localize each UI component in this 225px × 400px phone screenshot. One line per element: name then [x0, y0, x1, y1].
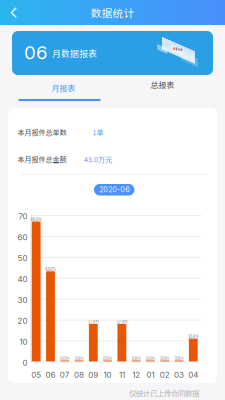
staticText: 10 — [104, 370, 112, 380]
staticText: 09 — [88, 370, 98, 380]
staticText: 20 — [17, 316, 27, 326]
staticText: 05 — [31, 370, 41, 380]
staticText: 17.9万 — [116, 318, 127, 325]
staticText: 10.8万 — [188, 333, 199, 340]
staticText: 40 — [17, 274, 27, 284]
staticText: 本月报件总金额 — [17, 154, 66, 164]
staticText: 本月报件总单数 — [17, 127, 66, 137]
staticText: 60 — [17, 232, 27, 242]
staticText: 06 — [24, 41, 48, 64]
staticText: 43.0万元 — [84, 154, 112, 164]
staticText: 06 — [45, 370, 55, 380]
staticText: 66.8万 — [31, 216, 42, 222]
staticText: 01 — [146, 370, 154, 380]
staticText: 总报表 — [150, 79, 174, 90]
staticText: 50 — [17, 253, 27, 263]
button[interactable]: 月报表 — [11, 75, 116, 101]
staticText: 30 — [17, 295, 27, 305]
staticText: 月数据报表 — [48, 46, 97, 59]
staticText: 0.0万 — [132, 355, 141, 361]
staticText: 10 — [19, 337, 27, 347]
staticText: 2020-06 — [99, 185, 129, 194]
staticText: 仅统计已上传合同数据 — [129, 388, 199, 398]
staticText: 07 — [60, 370, 70, 380]
staticText: 08 — [74, 370, 84, 380]
button[interactable]: Back — [0, 0, 42, 25]
staticText: 0.0万 — [160, 355, 169, 361]
staticText: 月报表 — [51, 82, 75, 93]
staticText: 02 — [160, 370, 170, 380]
staticText: 17.9万 — [88, 318, 99, 325]
staticText: 0.0万 — [103, 355, 112, 361]
staticText: 0.0万 — [60, 355, 69, 361]
staticText: 12 — [132, 370, 140, 380]
staticText: 数据统计 — [90, 5, 134, 20]
button[interactable]: 总报表 — [110, 75, 215, 101]
staticText: 0 — [22, 358, 27, 368]
staticText: 03 — [174, 370, 184, 380]
staticText: 0.0万 — [146, 355, 155, 361]
staticText: 43.0万 — [45, 266, 56, 272]
staticText: 0.0万 — [74, 355, 83, 361]
staticText: 70 — [18, 211, 27, 221]
staticText: 0.0万 — [174, 355, 183, 361]
staticText: 11 — [119, 370, 125, 380]
staticText: 04 — [188, 370, 198, 380]
staticText: 1单 — [92, 127, 103, 137]
